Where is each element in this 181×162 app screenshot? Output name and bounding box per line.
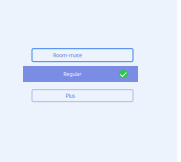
staticText: Plus bbox=[66, 92, 76, 99]
button[interactable]: Plus bbox=[32, 90, 133, 102]
button[interactable]: Room-mate bbox=[32, 49, 133, 62]
staticText: Regular bbox=[63, 70, 81, 78]
staticText: Room-mate bbox=[53, 52, 82, 59]
button[interactable]: Regular bbox=[23, 66, 138, 82]
